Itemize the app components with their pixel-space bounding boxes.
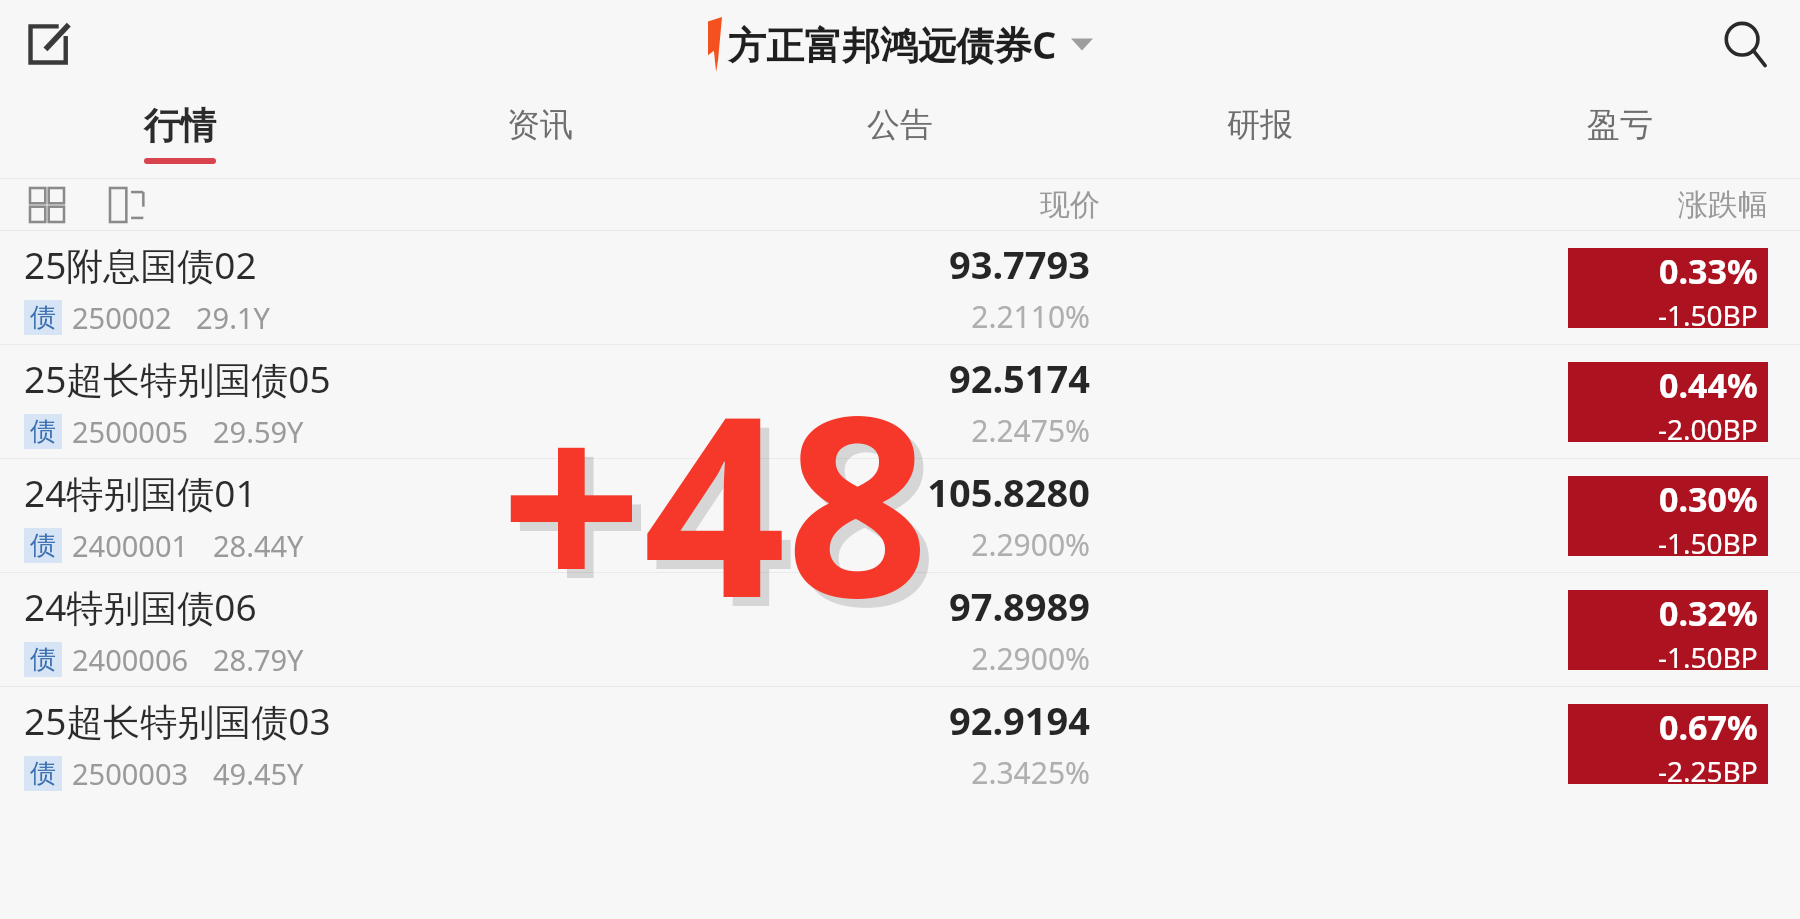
staticText: 现价 <box>1040 186 1100 224</box>
staticText: 250002 <box>72 298 172 337</box>
button[interactable]: 24特别国债06 <box>0 573 1800 686</box>
staticText: -2.00BP <box>1658 410 1758 442</box>
staticText: -2.25BP <box>1658 752 1758 784</box>
button[interactable]: 25超长特别国债05 <box>0 345 1800 458</box>
button[interactable]: 公告 <box>720 88 1080 178</box>
staticText: 2.2900% <box>971 638 1090 679</box>
button[interactable]: 25超长特别国债03 <box>0 687 1800 800</box>
staticText: 行情 <box>144 103 216 148</box>
staticText: 24特别国债01 <box>24 467 257 518</box>
button[interactable]: 25附息国债02 <box>0 231 1800 344</box>
staticText: +48 <box>509 339 938 680</box>
staticText: 2500003 <box>72 754 189 793</box>
staticText: 2.2475% <box>971 410 1090 451</box>
button[interactable]: 行情 <box>0 88 360 178</box>
button[interactable]: 研报 <box>1080 88 1440 178</box>
staticText: 105.8280 <box>927 466 1090 518</box>
staticText: 0.30% <box>1659 476 1758 522</box>
staticText: 29.1Y <box>196 298 270 337</box>
staticText: +48 <box>500 330 929 671</box>
staticText: 92.5174 <box>948 352 1090 404</box>
button[interactable]: 资讯 <box>360 88 720 178</box>
staticText: 93.7793 <box>948 238 1090 290</box>
staticText: 2.2110% <box>971 296 1090 337</box>
staticText: 2.3425% <box>971 752 1090 793</box>
button[interactable]: Grid view <box>24 182 70 228</box>
staticText: 盈亏 <box>1587 104 1653 146</box>
staticText: 债 <box>30 529 56 562</box>
staticText: -1.50BP <box>1658 296 1758 328</box>
staticText: 研报 <box>1227 104 1293 146</box>
staticText: 资讯 <box>507 104 573 146</box>
staticText: 25附息国债02 <box>24 239 257 290</box>
staticText: 2400001 <box>72 526 189 565</box>
button[interactable]: 24特别国债01 <box>0 459 1800 572</box>
staticText: 49.45Y <box>213 754 304 793</box>
staticText: 0.44% <box>1659 362 1758 408</box>
staticText: 2.2900% <box>971 524 1090 565</box>
staticText: 29.59Y <box>213 412 304 451</box>
staticText: 债 <box>30 643 56 676</box>
staticText: 0.67% <box>1659 704 1758 750</box>
staticText: 债 <box>30 757 56 790</box>
button[interactable]: 盈亏 <box>1440 88 1800 178</box>
staticText: 债 <box>30 301 56 334</box>
staticText: 24特别国债06 <box>24 581 257 632</box>
staticText: -1.50BP <box>1658 524 1758 556</box>
staticText: 25超长特别国债05 <box>24 353 331 404</box>
button[interactable]: Sort <box>104 182 150 228</box>
staticText: 0.32% <box>1659 590 1758 636</box>
staticText: 公告 <box>867 104 933 146</box>
button[interactable]: 方正富邦鸿远债券C <box>708 16 1093 72</box>
staticText: 方正富邦鸿远债券C <box>728 18 1057 70</box>
staticText: 2500005 <box>72 412 189 451</box>
staticText: 2400006 <box>72 640 189 679</box>
button[interactable]: Edit <box>18 13 80 75</box>
button[interactable]: Search <box>1712 11 1778 77</box>
staticText: 28.79Y <box>213 640 304 679</box>
staticText: 25超长特别国债03 <box>24 695 331 746</box>
staticText: 28.44Y <box>213 526 304 565</box>
staticText: -1.50BP <box>1658 638 1758 670</box>
staticText: 0.33% <box>1659 248 1758 294</box>
staticText: 债 <box>30 415 56 448</box>
staticText: 涨跌幅 <box>1678 186 1768 224</box>
staticText: 92.9194 <box>948 694 1090 746</box>
staticText: 97.8989 <box>948 580 1090 632</box>
